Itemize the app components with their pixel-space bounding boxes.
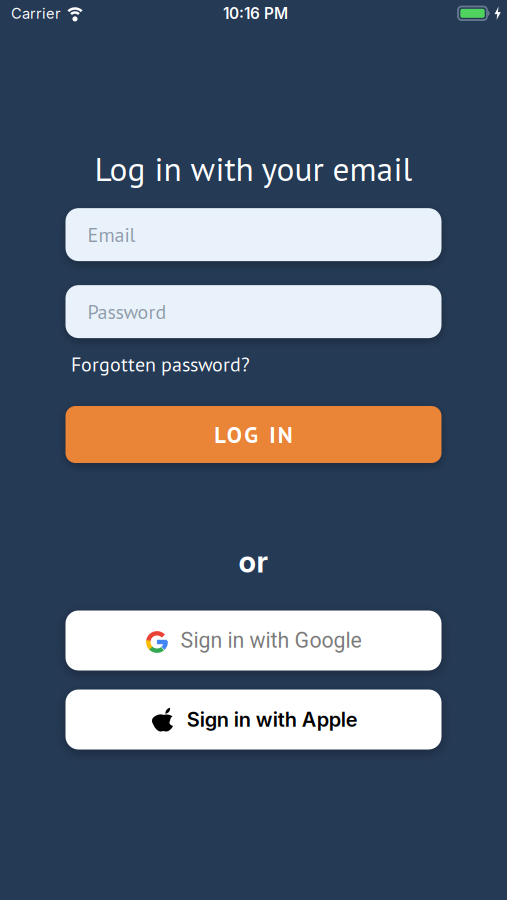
button[interactable]: Sign in with Google: [65, 610, 441, 670]
button[interactable]: Email: [65, 208, 441, 261]
button[interactable]: Password: [65, 285, 441, 338]
staticText: Sign in with Google: [180, 628, 361, 653]
staticText: Password: [87, 299, 166, 325]
staticText: 10:16 PM: [223, 4, 288, 23]
button[interactable]: Forgotten password?: [71, 351, 250, 377]
staticText: Carrier: [11, 5, 61, 22]
button[interactable]: LOG IN: [65, 406, 441, 463]
staticText: Sign in with Apple: [187, 707, 358, 732]
staticText: or: [238, 544, 268, 579]
staticText: Email: [87, 222, 135, 248]
staticText: LOG IN: [214, 420, 293, 449]
button[interactable]: Sign in with Apple: [65, 689, 441, 749]
staticText: Forgotten password?: [71, 351, 250, 377]
staticText: Log in with your email: [94, 147, 412, 190]
